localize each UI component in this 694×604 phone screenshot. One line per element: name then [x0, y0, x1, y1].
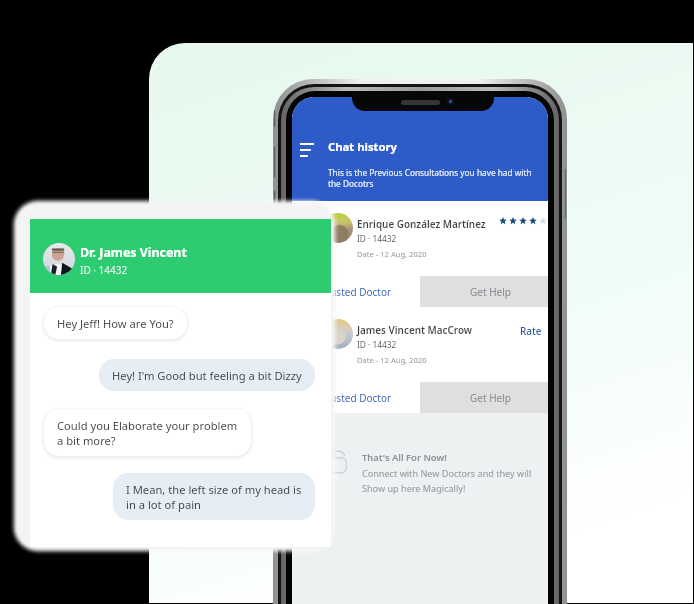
staticText: ID · 14432 — [80, 263, 128, 277]
staticText: Date - 12 Aug, 2020 — [357, 249, 427, 259]
staticText: Trusted Doctor — [321, 285, 392, 299]
button[interactable]: Rate — [520, 324, 542, 338]
button[interactable]: Hey! I'm Good but feeling a bit Dizzy — [99, 359, 315, 391]
staticText: I Mean, the left size of my head is in a… — [126, 482, 302, 512]
staticText: Dr. James Vincent — [80, 244, 187, 261]
staticText: This is the Previous Consultations you h… — [328, 167, 532, 190]
staticText: Chat history — [328, 139, 398, 154]
button[interactable]: Get Help — [420, 382, 548, 413]
staticText: That's All For Now! — [362, 451, 447, 464]
staticText: Date - 12 Aug, 2020 — [357, 355, 427, 365]
staticText: Get Help — [470, 391, 511, 405]
button[interactable]: Enrique González Martínez — [292, 201, 548, 276]
button[interactable]: I Mean, the left size of my head is in a… — [113, 473, 315, 520]
staticText: Rate — [520, 324, 542, 338]
staticText: Trusted Doctor — [321, 391, 392, 405]
button[interactable]: James Vincent MacCrow — [292, 307, 548, 382]
staticText: Get Help — [470, 285, 511, 299]
button[interactable]: Menu — [296, 139, 318, 161]
staticText: Connect with New Doctors and they will S… — [362, 467, 532, 494]
button[interactable]: Could you Elaborate your problem a bit m… — [44, 409, 251, 456]
staticText: ID · 14432 — [357, 339, 397, 350]
button[interactable]: Hey Jeff! How are You? — [44, 307, 187, 339]
staticText: Hey Jeff! How are You? — [57, 316, 174, 331]
button[interactable]: Trusted Doctor — [292, 382, 420, 413]
button[interactable]: Get Help — [420, 276, 548, 307]
staticText: ID · 14432 — [357, 233, 397, 244]
staticText: Enrique González Martínez — [357, 217, 486, 230]
button[interactable]: Trusted Doctor — [292, 276, 420, 307]
staticText: James Vincent MacCrow — [357, 323, 473, 336]
staticText: Hey! I'm Good but feeling a bit Dizzy — [112, 368, 302, 383]
staticText: Could you Elaborate your problem a bit m… — [57, 418, 238, 448]
